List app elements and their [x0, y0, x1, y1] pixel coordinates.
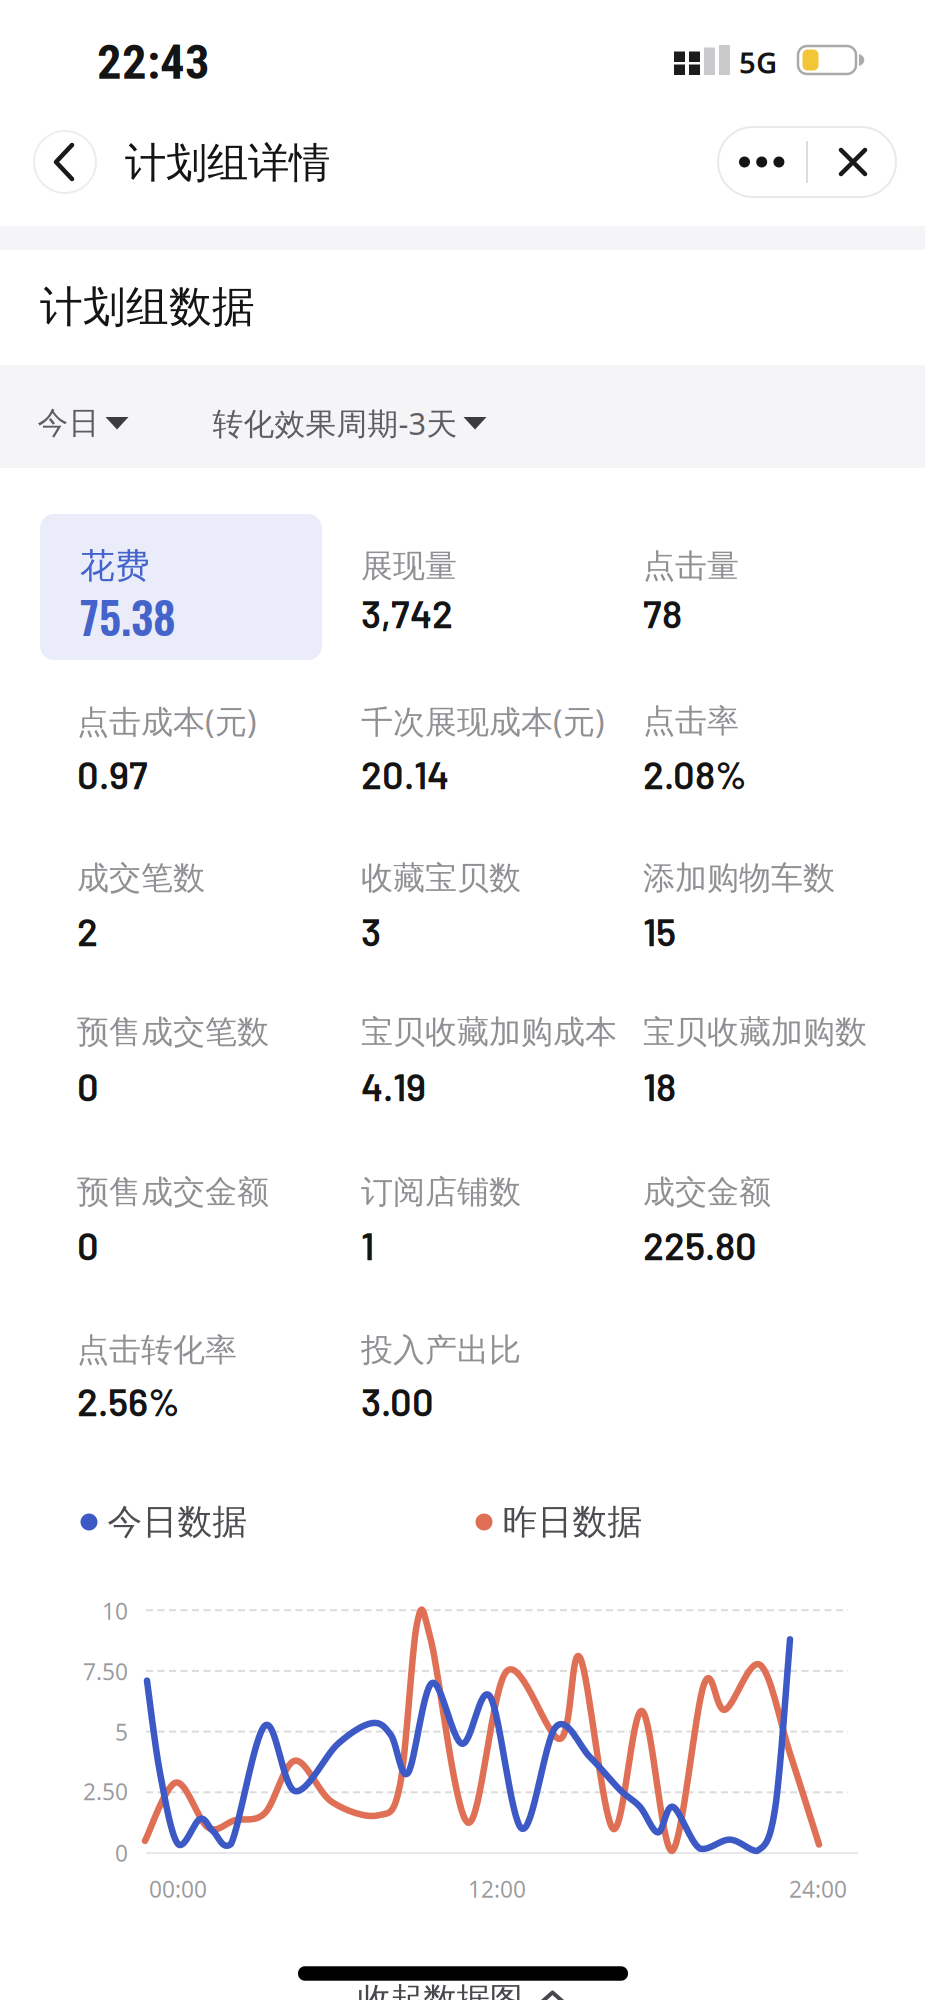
staticText: 订阅店铺数	[361, 1172, 521, 1212]
button[interactable]: More	[718, 127, 807, 197]
button[interactable]: 收起数据图	[357, 1979, 570, 2000]
staticText: 千次展现成本(元)	[361, 700, 605, 742]
staticText: 12:00	[468, 1874, 526, 1904]
staticText: 宝贝收藏加购成本	[361, 1012, 617, 1052]
staticText: 3	[361, 908, 381, 954]
staticText: 收起数据图	[357, 1979, 522, 2000]
staticText: 投入产出比	[361, 1330, 521, 1370]
staticText: 3,742	[361, 590, 453, 636]
staticText: 展现量	[361, 546, 457, 586]
staticText: 成交笔数	[77, 858, 205, 898]
staticText: 2	[77, 908, 98, 954]
staticText: 5G	[739, 42, 777, 81]
staticText: 宝贝收藏加购数	[643, 1012, 867, 1052]
staticText: 24:00	[789, 1874, 847, 1904]
staticText: 78	[643, 590, 682, 636]
staticText: 2.08%	[643, 751, 747, 797]
staticText: 5	[115, 1717, 128, 1747]
staticText: 4.19	[361, 1063, 426, 1109]
staticText: 点击量	[643, 546, 739, 586]
staticText: 18	[643, 1063, 676, 1109]
staticText: 今日数据	[107, 1501, 247, 1543]
staticText: 点击转化率	[77, 1330, 237, 1370]
button[interactable]: 今日数据	[80, 1501, 247, 1543]
button[interactable]: Back	[34, 131, 96, 193]
button[interactable]: Close	[807, 127, 896, 197]
staticText: 15	[643, 908, 676, 954]
staticText: 成交金额	[643, 1172, 771, 1212]
staticText: 2.50	[83, 1776, 128, 1806]
staticText: 计划组详情	[125, 138, 330, 188]
button[interactable]: 点击量	[643, 514, 883, 660]
staticText: 点击率	[643, 701, 739, 741]
button[interactable]: 今日	[37, 404, 128, 442]
staticText: 00:00	[149, 1874, 207, 1904]
staticText: 0.97	[77, 751, 148, 797]
button[interactable]: 花费	[40, 514, 322, 660]
staticText: 2.56%	[77, 1378, 180, 1424]
staticText: 昨日数据	[502, 1501, 642, 1543]
staticText: 225.80	[643, 1222, 757, 1268]
button[interactable]: 展现量	[361, 514, 601, 660]
staticText: 10	[102, 1596, 128, 1626]
staticText: 7.50	[83, 1656, 128, 1686]
staticText: 22:43	[97, 33, 210, 90]
staticText: 预售成交笔数	[77, 1012, 269, 1052]
staticText: 计划组数据	[40, 281, 255, 333]
staticText: 0	[77, 1222, 99, 1268]
staticText: 点击成本(元)	[77, 700, 257, 742]
staticText: 添加购物车数	[643, 858, 835, 898]
staticText: 转化效果周期-3天	[212, 403, 457, 443]
staticText: 0	[77, 1063, 99, 1109]
button[interactable]: 昨日数据	[475, 1501, 642, 1543]
staticText: 花费	[80, 545, 150, 587]
staticText: 75.38	[80, 583, 176, 649]
button[interactable]: 转化效果周期-3天	[212, 403, 486, 443]
staticText: 收藏宝贝数	[361, 858, 521, 898]
staticText: 预售成交金额	[77, 1172, 269, 1212]
staticText: 1	[361, 1222, 374, 1268]
staticText: 今日	[37, 404, 99, 442]
staticText: 20.14	[361, 751, 449, 797]
staticText: 3.00	[361, 1378, 434, 1424]
staticText: 0	[115, 1838, 128, 1868]
